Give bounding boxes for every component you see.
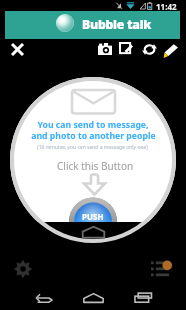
- staticText: (10 minutes, you can send a message only…: [37, 144, 148, 151]
- button[interactable]: Back: [36, 293, 52, 303]
- staticText: and photo to another people: [31, 130, 156, 142]
- button[interactable]: List: [151, 260, 173, 278]
- button[interactable]: PUSH: [0, 197, 186, 222]
- button[interactable]: Home: [83, 293, 104, 303]
- staticText: Bubble talk: [82, 16, 152, 33]
- button[interactable]: Camera: [98, 43, 112, 55]
- button[interactable]: Settings: [13, 259, 33, 279]
- staticText: You can send to message,: [37, 119, 149, 131]
- staticText: Click this Button: [57, 159, 134, 173]
- button[interactable]: Refresh: [142, 43, 157, 56]
- staticText: 11:42: [156, 1, 177, 12]
- button[interactable]: Close: [11, 43, 24, 56]
- button[interactable]: Draw: [163, 43, 178, 58]
- button[interactable]: Compose: [120, 43, 133, 56]
- button[interactable]: Recents: [134, 292, 153, 303]
- staticText: PUSH: [82, 211, 104, 222]
